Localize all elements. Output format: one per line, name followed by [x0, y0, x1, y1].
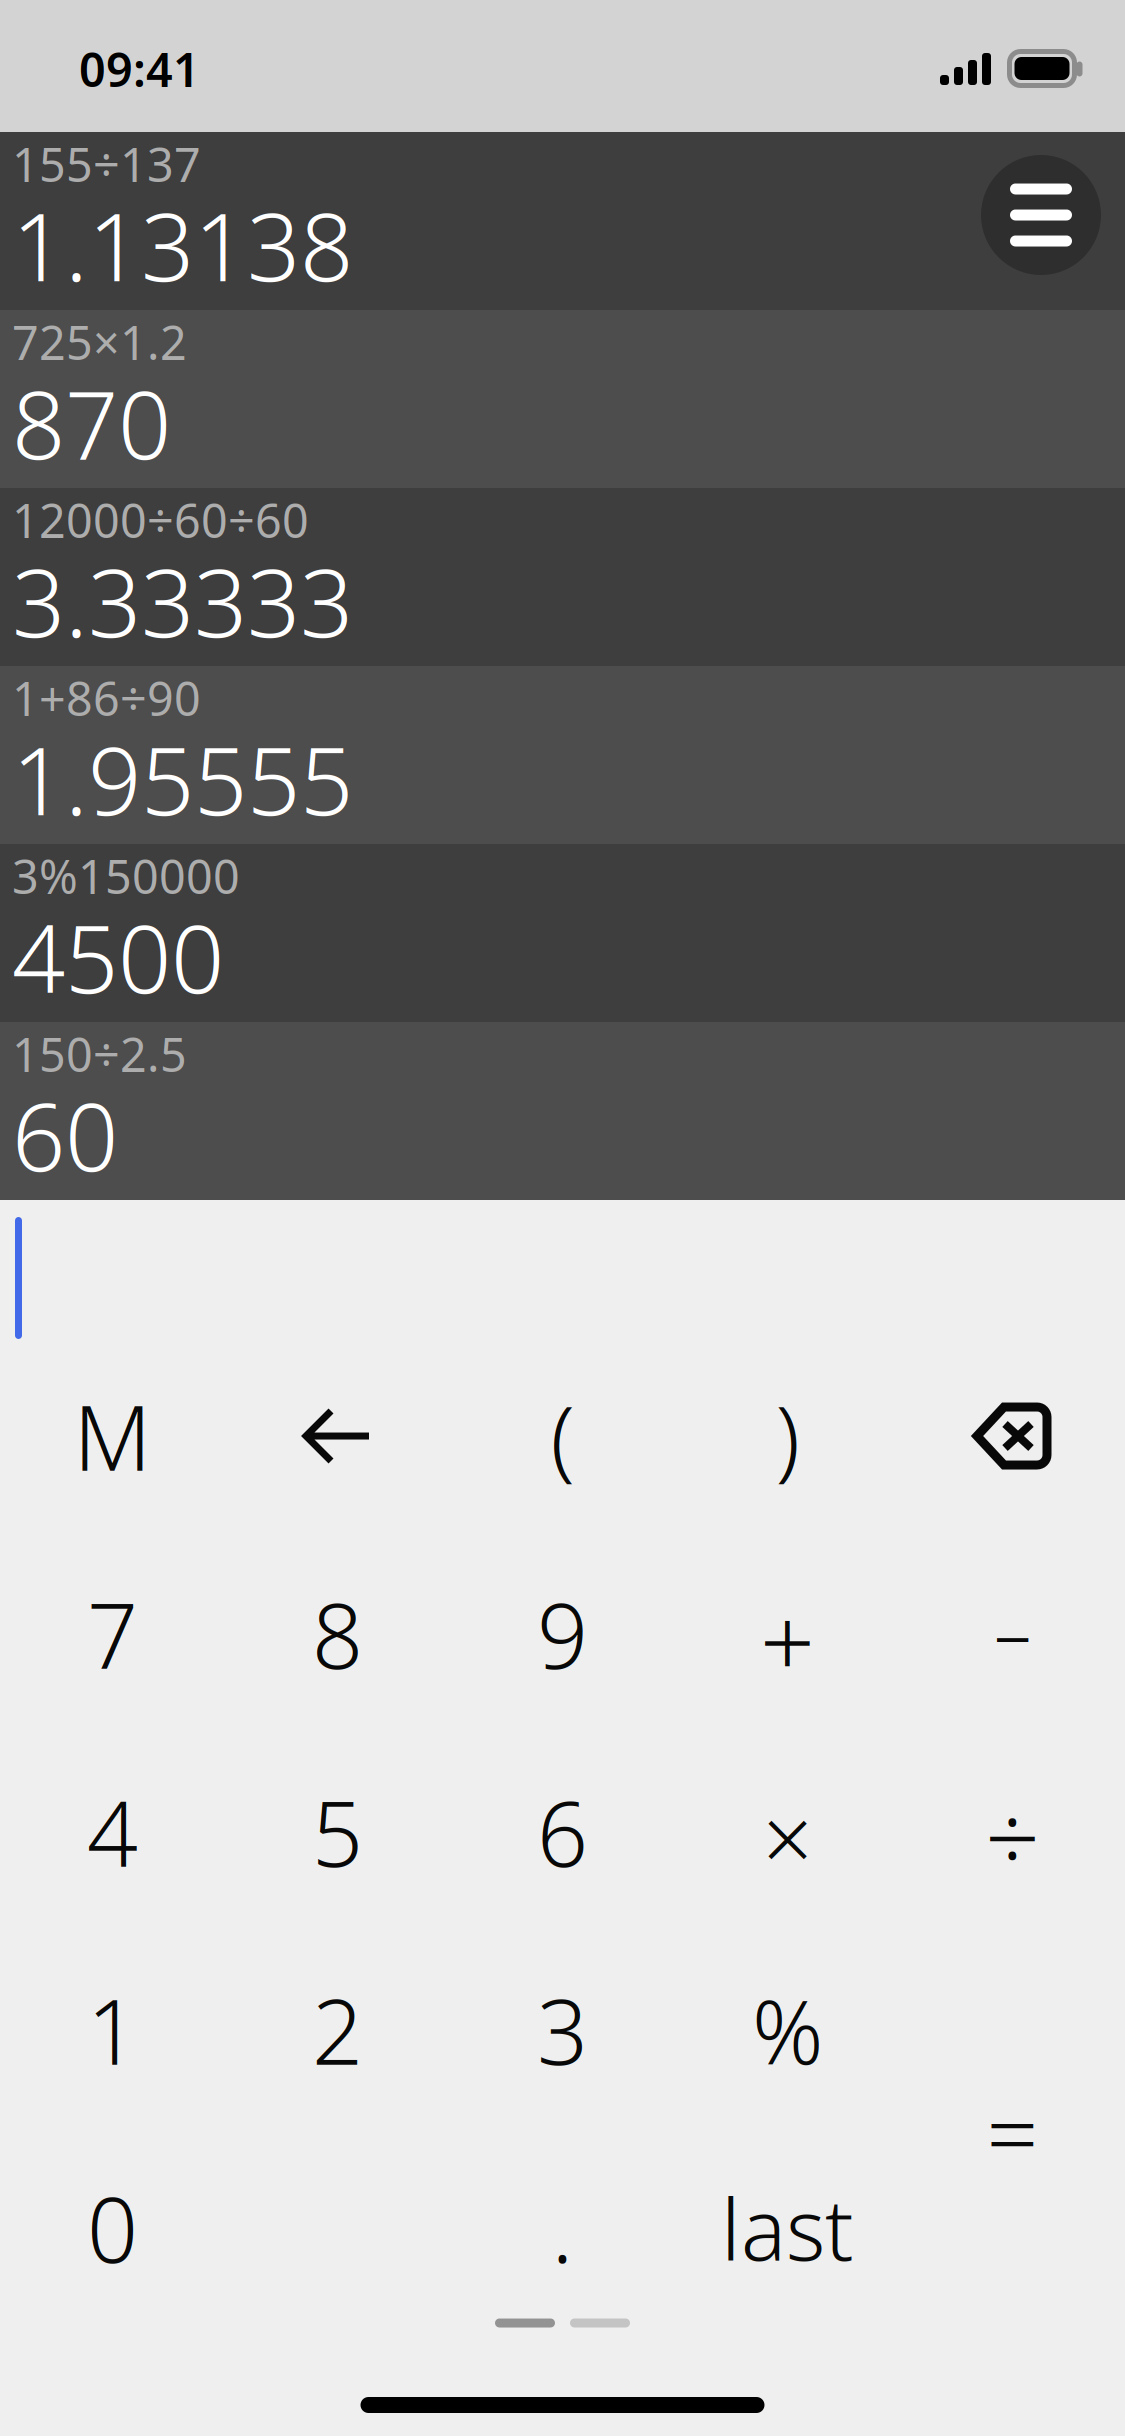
staticText: =	[986, 2072, 1038, 2192]
staticText: )	[775, 1378, 799, 1494]
staticText: 60	[12, 1073, 118, 1197]
staticText: ×	[762, 1779, 812, 1895]
staticText: 1.95555	[12, 717, 353, 841]
button[interactable]: 7	[0, 1535, 225, 1733]
staticText: 9	[537, 1575, 588, 1693]
staticText: 7	[87, 1575, 138, 1693]
button[interactable]: 1	[0, 1931, 225, 2129]
button[interactable]: Open parenthesis	[450, 1337, 675, 1535]
staticText: 3	[537, 1971, 588, 2089]
button[interactable]: 0	[0, 2129, 225, 2327]
staticText: .	[551, 2169, 573, 2287]
staticText: 5	[312, 1773, 363, 1891]
staticText: last	[721, 2172, 854, 2284]
staticText: 2	[312, 1971, 363, 2089]
staticText: 09:41	[79, 38, 200, 100]
staticText: 4500	[12, 895, 224, 1019]
button[interactable]: Multiply	[675, 1738, 900, 1936]
staticText: (	[550, 1378, 574, 1494]
button[interactable]: Percent	[675, 1931, 900, 2129]
staticText: 1	[87, 1971, 138, 2089]
staticText: ÷	[985, 1772, 1040, 1900]
staticText: 0	[87, 2169, 138, 2287]
button[interactable]: Close parenthesis	[675, 1337, 900, 1535]
staticText: 870	[12, 361, 171, 485]
staticText: 725×1.2	[12, 311, 187, 373]
staticText: 150÷2.5	[12, 1023, 187, 1085]
button[interactable]: 5	[225, 1733, 450, 1931]
button[interactable]: Plus	[675, 1541, 900, 1739]
button[interactable]: 3	[450, 1931, 675, 2129]
staticText: 155÷137	[12, 133, 201, 195]
button[interactable]: 4	[0, 1733, 225, 1931]
button[interactable]: 2	[225, 1931, 450, 2129]
staticText: M	[73, 1377, 151, 1495]
button[interactable]: Move cursor left	[225, 1337, 450, 1535]
staticText: 12000÷60÷60	[12, 489, 309, 551]
button[interactable]: 8	[225, 1535, 450, 1733]
staticText: 1+86÷90	[12, 667, 201, 729]
button[interactable]: Menu	[981, 155, 1101, 275]
button[interactable]: Memory	[0, 1337, 225, 1535]
staticText: 8	[312, 1575, 363, 1693]
button[interactable]: Delete	[900, 1337, 1125, 1535]
button[interactable]: Minus	[900, 1532, 1125, 1730]
staticText: 4	[87, 1773, 138, 1891]
staticText: 3.33333	[12, 539, 353, 663]
staticText: 3%150000	[12, 845, 240, 907]
button[interactable]: 9	[450, 1535, 675, 1733]
button[interactable]: Divide	[900, 1737, 1125, 1935]
button[interactable]: Equals	[900, 1934, 1125, 2330]
button[interactable]: Decimal point	[450, 2129, 675, 2327]
staticText: %	[752, 1972, 823, 2088]
staticText: –	[994, 1581, 1031, 1681]
button[interactable]: 6	[450, 1733, 675, 1931]
staticText: +	[760, 1576, 815, 1704]
button[interactable]: last	[675, 2129, 900, 2327]
staticText: 6	[537, 1773, 588, 1891]
staticText: 1.13138	[12, 183, 353, 307]
